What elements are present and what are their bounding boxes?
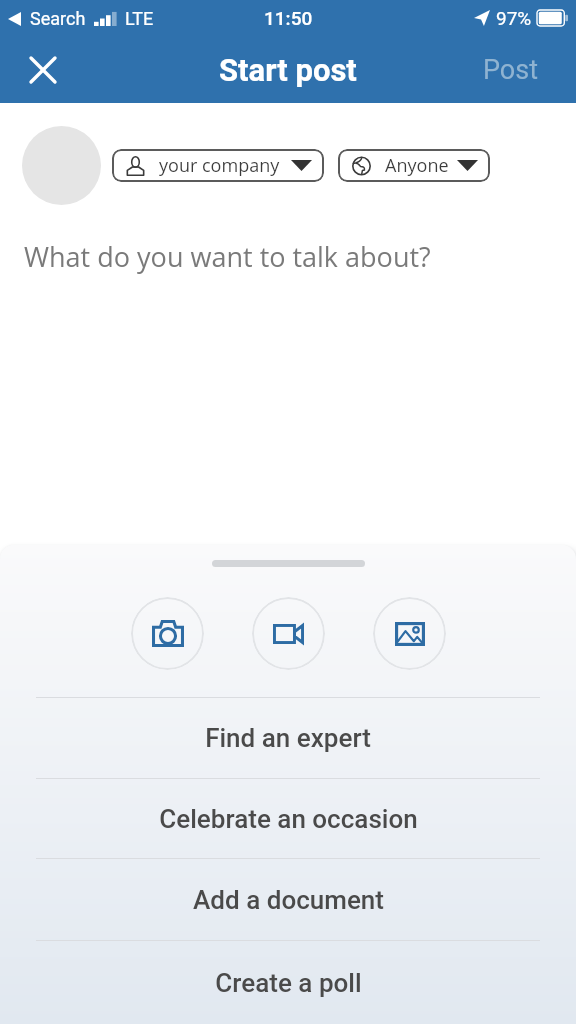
staticText: Post: [483, 54, 539, 86]
staticText: Add a document: [193, 885, 384, 915]
button[interactable]: Create a poll: [0, 941, 576, 1024]
staticText: Start post: [219, 52, 357, 88]
button[interactable]: Add photo: [373, 597, 446, 670]
button[interactable]: your company: [112, 149, 324, 182]
button[interactable]: Record video: [252, 597, 325, 670]
button[interactable]: Post: [461, 42, 576, 98]
button[interactable]: Take photo: [131, 597, 204, 670]
staticText: Anyone: [385, 153, 449, 178]
staticText: Find an expert: [205, 723, 371, 753]
staticText: LTE: [125, 8, 154, 29]
staticText: What do you want to talk about?: [24, 238, 431, 275]
staticText: Search: [30, 8, 86, 29]
button[interactable]: Find an expert: [0, 698, 576, 778]
staticText: your company: [159, 153, 280, 178]
button[interactable]: Celebrate an occasion: [0, 779, 576, 858]
staticText: 97%: [496, 7, 532, 29]
staticText: Celebrate an occasion: [159, 804, 418, 834]
staticText: 11:50: [264, 7, 313, 29]
button[interactable]: Add a document: [0, 859, 576, 940]
staticText: Create a poll: [215, 968, 362, 998]
button[interactable]: Close: [15, 42, 71, 98]
button[interactable]: Anyone: [338, 149, 490, 182]
